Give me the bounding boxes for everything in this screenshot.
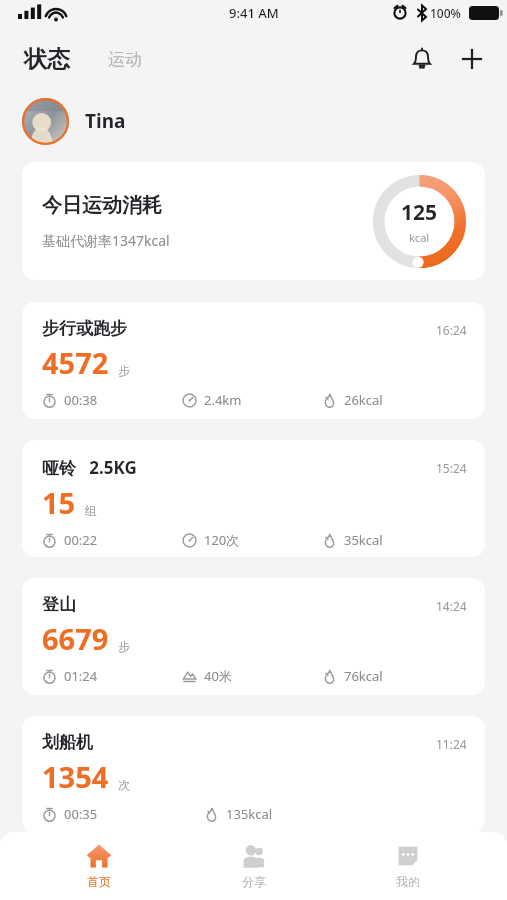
staticText: 运动 xyxy=(108,49,142,70)
staticText: 11:24 xyxy=(436,736,467,752)
staticText: 状态 xyxy=(24,45,70,74)
staticText: 35kcal xyxy=(344,531,383,549)
staticText: 00:22 xyxy=(64,531,98,549)
staticText: 40米 xyxy=(204,667,232,685)
staticText: 14:24 xyxy=(436,598,467,614)
staticText: 6679 xyxy=(42,619,109,658)
staticText: 00:35 xyxy=(64,805,98,823)
button[interactable]: 15:24 xyxy=(22,440,485,557)
staticText: 今日运动消耗 xyxy=(42,193,162,218)
staticText: 9:41 AM xyxy=(229,4,279,22)
staticText: 01:24 xyxy=(64,667,98,685)
staticText: 哑铃 2.5KG xyxy=(42,456,137,479)
button[interactable]: 11:24 xyxy=(22,716,485,833)
staticText: 76kcal xyxy=(344,667,383,685)
button[interactable]: 运动 xyxy=(106,45,144,74)
staticText: 首页 xyxy=(87,874,111,889)
button[interactable]: 今日运动消耗 xyxy=(22,162,485,280)
staticText: 分享 xyxy=(242,874,266,889)
staticText: 120次 xyxy=(204,531,240,549)
staticText: 135kcal xyxy=(226,805,273,823)
staticText: 组 xyxy=(85,503,97,518)
button[interactable]: 状态 xyxy=(22,41,72,78)
staticText: 步 xyxy=(118,363,130,378)
staticText: 15 xyxy=(42,483,76,522)
staticText: 我的 xyxy=(396,874,420,889)
staticText: 2.4km xyxy=(204,391,242,409)
staticText: 基础代谢率1347kcal xyxy=(42,231,170,250)
staticText: 步 xyxy=(118,639,130,654)
button[interactable]: Notifications xyxy=(401,38,443,80)
staticText: 登山 xyxy=(42,594,76,615)
staticText: 16:24 xyxy=(436,322,467,338)
staticText: 4572 xyxy=(42,343,109,382)
staticText: 15:24 xyxy=(436,460,467,476)
staticText: Tina xyxy=(85,108,126,134)
button[interactable]: 首页 xyxy=(44,837,154,895)
button[interactable]: 16:24 xyxy=(22,302,485,419)
button[interactable]: 分享 xyxy=(199,837,309,895)
staticText: 次 xyxy=(118,777,130,792)
button[interactable]: Tina xyxy=(0,90,507,152)
staticText: 1354 xyxy=(42,757,109,796)
staticText: 100% xyxy=(430,5,461,21)
button[interactable]: 14:24 xyxy=(22,578,485,695)
staticText: 26kcal xyxy=(344,391,383,409)
staticText: kcal xyxy=(409,230,430,245)
staticText: 步行或跑步 xyxy=(42,318,127,339)
button[interactable]: Add xyxy=(451,38,493,80)
staticText: 00:38 xyxy=(64,391,98,409)
staticText: 划船机 xyxy=(42,732,93,753)
button[interactable]: 我的 xyxy=(353,837,463,895)
staticText: 125 xyxy=(401,198,438,227)
